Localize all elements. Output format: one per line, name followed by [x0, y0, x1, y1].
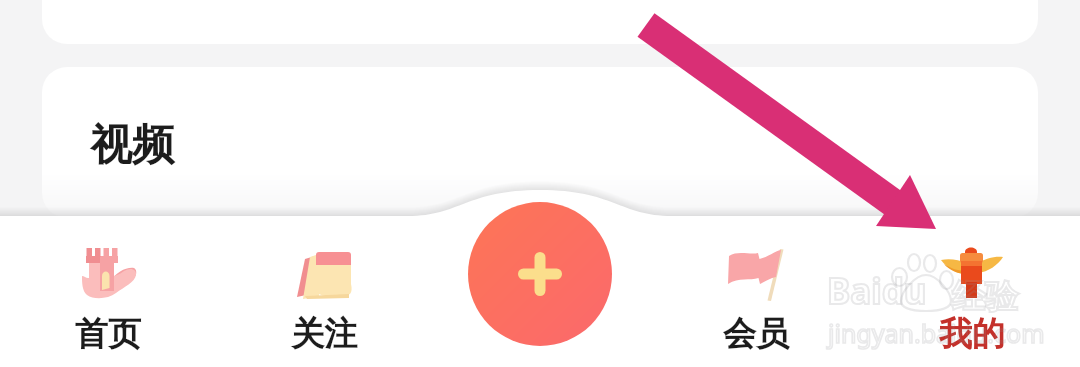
button[interactable]: Add	[468, 202, 612, 346]
staticText: 视频	[90, 119, 174, 172]
button[interactable]: 会员	[648, 216, 864, 355]
button[interactable]: 关注	[216, 216, 432, 355]
staticText: Baidu	[827, 267, 927, 315]
staticText: 经验	[952, 276, 1018, 318]
button[interactable]: 首页	[0, 216, 216, 355]
button[interactable]: 我的	[864, 216, 1080, 355]
staticText: 关注	[291, 313, 357, 355]
staticText: 会员	[723, 313, 789, 355]
staticText: 首页	[75, 313, 141, 355]
staticText: 我的	[939, 313, 1005, 355]
staticText: jingyan.baidu.com	[828, 316, 1045, 350]
